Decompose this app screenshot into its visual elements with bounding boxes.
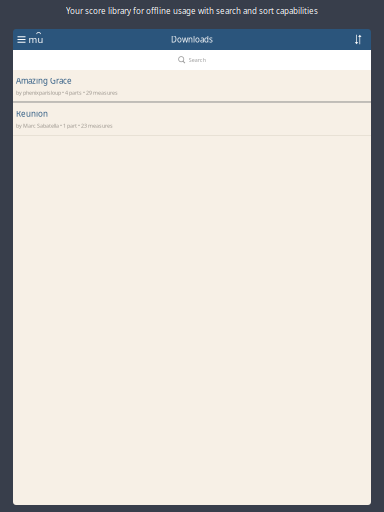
button[interactable]: Amazing Grace	[13, 70, 371, 101]
staticText: mu	[28, 33, 43, 46]
staticText: Reunion	[16, 108, 48, 119]
staticText: Search	[189, 56, 206, 64]
staticText: Your score library for offline usage wit…	[66, 6, 318, 16]
staticText: by phenixparisloup • 4 parts • 29 measur…	[16, 89, 118, 96]
button[interactable]: Reunion	[13, 102, 371, 135]
button[interactable]: Search	[13, 50, 371, 70]
staticText: Amazing Grace	[16, 75, 72, 86]
staticText: by Marc Sabatella • 1 part • 23 measures	[16, 122, 113, 129]
button[interactable]: Sort	[348, 29, 371, 50]
staticText: Downloads	[171, 34, 213, 45]
button[interactable]: Menu	[13, 29, 49, 50]
